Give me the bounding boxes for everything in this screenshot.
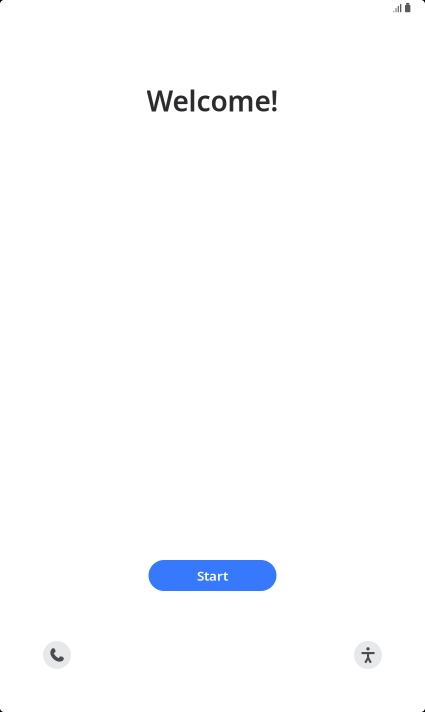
button[interactable]: Accessibility xyxy=(354,641,382,669)
button[interactable]: Call xyxy=(43,641,71,669)
staticText: Welcome! xyxy=(146,82,278,119)
staticText: Start xyxy=(197,567,228,584)
button[interactable]: Start xyxy=(148,560,276,591)
